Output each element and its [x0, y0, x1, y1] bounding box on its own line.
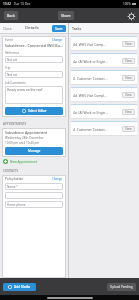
staticText: APPOINTMENTS	[3, 122, 27, 126]
button[interactable]: View	[122, 75, 135, 81]
staticText: Back	[7, 13, 15, 18]
staticText: Job Comments	[5, 81, 26, 85]
button[interactable]: View	[122, 41, 135, 47]
staticText: Subsidence - Connected (Will Burns)	[5, 43, 63, 48]
staticText: 4a. (A) Work or Engin...	[73, 59, 121, 63]
staticText: Policyholder	[5, 177, 24, 181]
staticText: View	[125, 110, 132, 114]
staticText: Change	[52, 177, 63, 181]
button[interactable]: New Appointment	[3, 159, 65, 164]
button[interactable]: 4d. WHS Visit Compl...	[71, 87, 137, 102]
staticText: 4d. WHS Visit Compl...	[73, 93, 121, 97]
staticText: Share	[61, 13, 71, 18]
staticText: View	[125, 76, 132, 80]
staticText: Manage	[28, 149, 41, 153]
staticText: Trip	[5, 66, 11, 70]
staticText: View	[125, 42, 132, 46]
staticText: Select Editor	[28, 109, 47, 113]
staticText: View	[125, 93, 132, 97]
staticText: Event	[5, 38, 13, 42]
button[interactable]: View	[122, 126, 135, 132]
button[interactable]: Not set	[5, 56, 63, 63]
button[interactable]: 4a. (A) Work or Engin...	[71, 53, 137, 68]
button[interactable]: Manage	[5, 147, 63, 155]
button[interactable]: 4a. (A) Work or Engin...	[71, 104, 137, 119]
staticText: View	[125, 59, 132, 63]
button[interactable]	[5, 192, 63, 199]
button[interactable]: View	[122, 58, 135, 64]
staticText: 4. Customer Contact...	[73, 127, 121, 131]
staticText: Subsidence Appointment	[5, 130, 48, 135]
button[interactable]: Save	[52, 25, 66, 32]
staticText: 10:32	[3, 2, 12, 6]
staticText: Home phone	[7, 203, 26, 207]
button[interactable]: 4. Customer Contact ...	[71, 70, 137, 85]
button[interactable]: 4. Customer Contact...	[71, 121, 137, 136]
staticText: 4. Customer Contact ...	[73, 76, 121, 80]
staticText: 100%	[123, 2, 131, 6]
button[interactable]: Settings	[126, 11, 136, 21]
button[interactable]: View	[122, 109, 135, 115]
button[interactable]: Home phone	[5, 201, 63, 208]
staticText: View	[125, 127, 132, 131]
button[interactable]: Upload Pending	[107, 283, 136, 291]
staticText: Details	[25, 25, 39, 31]
staticText: Not set	[7, 58, 18, 62]
button[interactable]: Back	[4, 11, 18, 20]
staticText: Upload Pending	[110, 285, 133, 289]
staticText: Tasks	[72, 26, 82, 31]
button[interactable]: Subsidence Appointment	[2, 128, 66, 157]
button[interactable]: View	[122, 92, 135, 98]
button[interactable]: Share	[58, 11, 74, 20]
button[interactable]: Not set	[5, 71, 63, 78]
button[interactable]: 4d. WHS Visit Comp...	[71, 36, 137, 51]
button[interactable]: Close	[2, 25, 13, 32]
staticText: Tue 13 Dec	[14, 2, 31, 6]
staticText: New Appointment	[10, 160, 38, 164]
staticText: 10:00 pm until 10:40 pm	[5, 141, 40, 145]
staticText: Change	[52, 38, 63, 42]
staticText: CONTACTS	[3, 169, 19, 173]
button[interactable]: Add Media	[3, 283, 36, 291]
button[interactable]: Name *	[5, 183, 63, 190]
button[interactable]: Policyholder	[2, 175, 66, 278]
staticText: Name *	[7, 185, 18, 189]
staticText: Reference	[5, 51, 20, 55]
staticText: Wednesday 28th December	[5, 136, 44, 140]
staticText: 4d. WHS Visit Comp...	[73, 42, 121, 46]
staticText: Not set	[7, 73, 18, 77]
staticText: Heavy snow on the roof	[7, 88, 43, 92]
staticText: Close	[3, 26, 12, 31]
button[interactable]: Heavy snow on the roof	[5, 86, 63, 104]
staticText: Add Media	[14, 285, 31, 289]
staticText: Save	[55, 26, 63, 31]
staticText: 4a. (A) Work or Engin...	[73, 110, 121, 114]
button[interactable]: Event	[2, 36, 66, 117]
button[interactable]: Select Editor	[5, 107, 63, 115]
